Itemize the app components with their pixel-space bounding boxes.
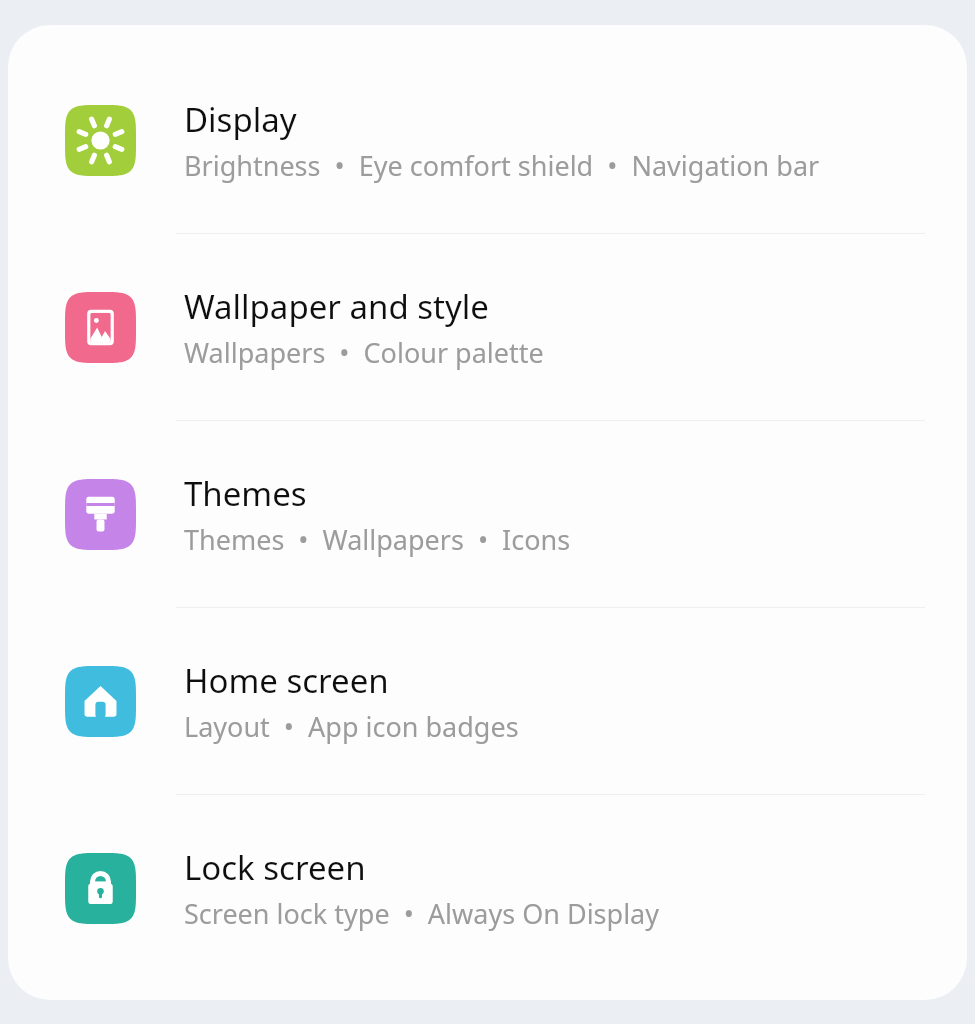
- other: Display: [65, 105, 136, 176]
- staticText: Display: [184, 97, 297, 142]
- other: Home screen: [65, 666, 136, 737]
- staticText: Wallpapers • Colour palette: [184, 334, 544, 371]
- button[interactable]: Display: [8, 47, 967, 233]
- staticText: Layout • App icon badges: [184, 708, 519, 745]
- staticText: Wallpaper and style: [184, 284, 489, 329]
- staticText: Screen lock type • Always On Display: [184, 895, 660, 932]
- button[interactable]: Home screen: [8, 608, 967, 794]
- button[interactable]: Lock screen: [8, 795, 967, 981]
- other: Wallpaper and style: [65, 292, 136, 363]
- staticText: Lock screen: [184, 845, 366, 890]
- other: Themes: [65, 479, 136, 550]
- other: Lock screen: [65, 853, 136, 924]
- button[interactable]: Themes: [8, 421, 967, 607]
- button[interactable]: Wallpaper and style: [8, 234, 967, 420]
- staticText: Themes • Wallpapers • Icons: [184, 521, 571, 558]
- staticText: Themes: [184, 471, 307, 516]
- staticText: Brightness • Eye comfort shield • Naviga…: [184, 147, 820, 184]
- staticText: Home screen: [184, 658, 389, 703]
